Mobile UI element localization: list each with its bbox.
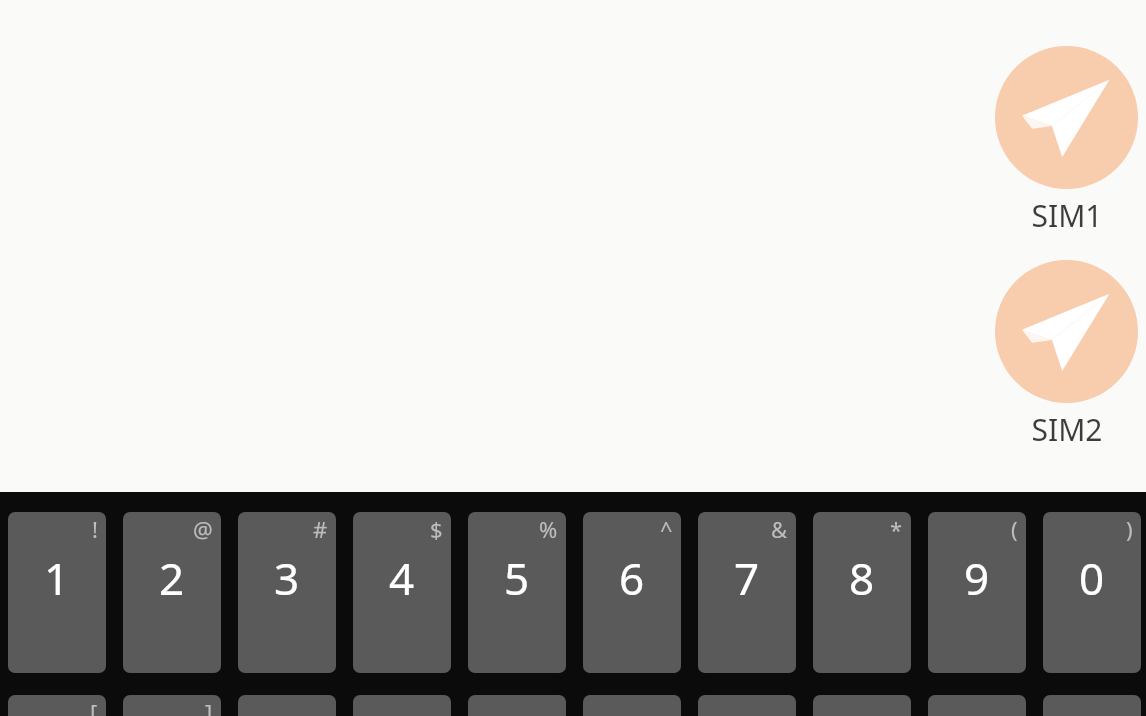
staticText: @: [193, 514, 213, 544]
staticText: 1: [44, 548, 70, 608]
staticText: 5: [504, 548, 530, 608]
button[interactable]: t: [468, 695, 566, 716]
staticText: SIM2: [1031, 409, 1103, 450]
staticText: 8: [849, 548, 875, 608]
staticText: &: [771, 514, 788, 544]
button[interactable]: $: [353, 512, 451, 673]
staticText: ^: [660, 514, 673, 544]
staticText: 6: [619, 548, 645, 608]
button[interactable]: i: [813, 695, 911, 716]
button[interactable]: r: [353, 695, 451, 716]
button[interactable]: ]: [123, 695, 221, 716]
staticText: 7: [734, 548, 760, 608]
staticText: 3: [274, 548, 300, 608]
button[interactable]: &: [698, 512, 796, 673]
staticText: (: [1011, 514, 1018, 544]
button[interactable]: y: [583, 695, 681, 716]
button[interactable]: (: [928, 512, 1026, 673]
staticText: #: [313, 514, 328, 544]
staticText: SIM1: [1031, 195, 1103, 236]
staticText: ]: [205, 697, 213, 716]
button[interactable]: #: [238, 512, 336, 673]
staticText: 0: [1079, 548, 1105, 608]
staticText: 2: [159, 548, 185, 608]
button[interactable]: [: [8, 695, 106, 716]
button[interactable]: p: [1043, 695, 1141, 716]
staticText: %: [539, 514, 558, 544]
button[interactable]: Send with SIM2: [995, 260, 1138, 403]
staticText: 9: [964, 548, 990, 608]
staticText: ): [1126, 514, 1133, 544]
button[interactable]: %: [468, 512, 566, 673]
button[interactable]: @: [123, 512, 221, 673]
staticText: *: [890, 514, 903, 544]
button[interactable]: ^: [583, 512, 681, 673]
staticText: 4: [389, 548, 415, 608]
button[interactable]: o: [928, 695, 1026, 716]
button[interactable]: e: [238, 695, 336, 716]
button[interactable]: ): [1043, 512, 1141, 673]
staticText: [: [90, 697, 98, 716]
button[interactable]: Send with SIM1: [995, 46, 1138, 189]
button[interactable]: *: [813, 512, 911, 673]
staticText: !: [92, 514, 98, 544]
button[interactable]: !: [8, 512, 106, 673]
staticText: $: [430, 514, 443, 544]
button[interactable]: u: [698, 695, 796, 716]
